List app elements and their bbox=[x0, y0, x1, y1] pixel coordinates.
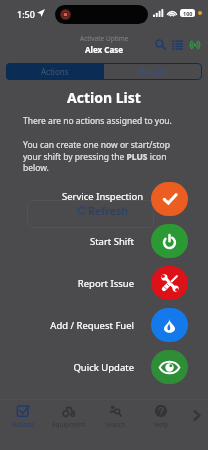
staticText: Search bbox=[105, 420, 126, 429]
button[interactable]: Add / Request Fuel bbox=[0, 308, 208, 342]
staticText: Equipment bbox=[52, 420, 86, 429]
staticText: 100 bbox=[183, 10, 193, 17]
staticText: Action List bbox=[0, 88, 208, 107]
button[interactable]: Search bbox=[154, 38, 167, 51]
staticText: Add / Request Fuel bbox=[0, 319, 134, 332]
staticText: Help bbox=[154, 420, 169, 429]
staticText: Refresh bbox=[88, 203, 129, 218]
staticText: Alex Case bbox=[85, 44, 123, 55]
staticText: Actions bbox=[12, 420, 35, 429]
button[interactable]: Equipment bbox=[46, 400, 92, 433]
staticText: 1:50 bbox=[17, 8, 35, 20]
button[interactable]: Report Issue bbox=[0, 266, 208, 300]
button[interactable]: List view bbox=[171, 38, 184, 51]
button[interactable]: Start Shift bbox=[0, 224, 208, 258]
staticText: Results bbox=[139, 66, 167, 77]
button[interactable]: Broadcast status bbox=[188, 38, 201, 51]
staticText: Quick Update bbox=[0, 361, 134, 374]
button[interactable]: Search bbox=[92, 400, 138, 433]
button[interactable]: Quick Update bbox=[0, 350, 208, 384]
staticText: You can create one now or start/stop you… bbox=[23, 139, 170, 173]
button[interactable]: Service Inspection bbox=[0, 182, 208, 216]
staticText: Start Shift bbox=[0, 235, 134, 248]
button[interactable]: Results bbox=[104, 63, 202, 80]
button[interactable]: More tabs bbox=[184, 400, 208, 433]
staticText: Activate Uptime bbox=[80, 34, 129, 43]
button[interactable]: Actions bbox=[0, 400, 46, 433]
button[interactable]: Help bbox=[138, 400, 184, 433]
staticText: Report Issue bbox=[0, 277, 134, 290]
staticText: Service Inspection bbox=[62, 190, 144, 203]
staticText: There are no actions assigned to you. bbox=[23, 115, 172, 127]
button[interactable]: Actions bbox=[6, 63, 104, 80]
staticText: Actions bbox=[41, 66, 69, 77]
